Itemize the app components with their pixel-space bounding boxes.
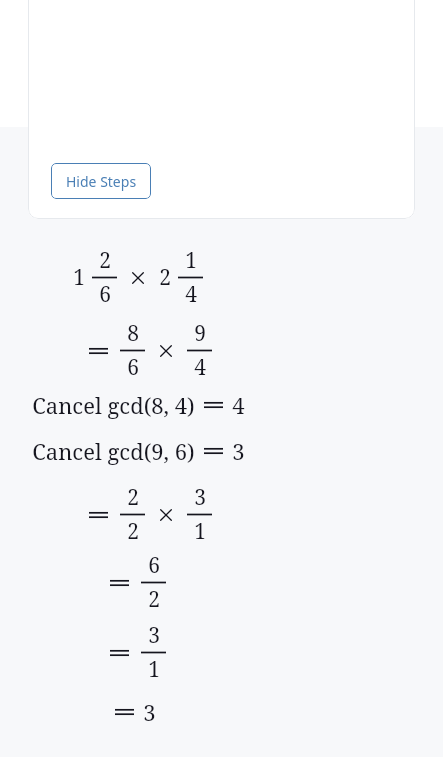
staticText: 8 [127,319,139,348]
staticText: 1 [194,517,206,546]
button[interactable]: Hide Steps [51,163,151,199]
staticText: 2 [159,263,171,292]
staticText: 4 [194,353,206,382]
staticText: 2 [127,483,139,512]
staticText: 1 [148,655,160,684]
staticText: 9 [194,319,206,348]
staticText: 6 [127,353,139,382]
staticText: Cancel gcd(9, 6) [32,436,195,466]
staticText: 1 [73,263,85,292]
staticText: 4 [185,280,197,309]
staticText: 3 [194,483,206,512]
staticText: 4 [232,390,245,420]
staticText: 3 [143,697,156,727]
staticText: 3 [148,621,160,650]
staticText: Cancel gcd(8, 4) [32,390,195,420]
staticText: 6 [99,280,111,309]
staticText: 2 [148,585,160,614]
staticText: 2 [99,246,111,275]
staticText: 1 [185,246,197,275]
staticText: Hide Steps [66,172,137,191]
staticText: 3 [232,436,245,466]
staticText: 6 [148,551,160,580]
staticText: 2 [127,517,139,546]
